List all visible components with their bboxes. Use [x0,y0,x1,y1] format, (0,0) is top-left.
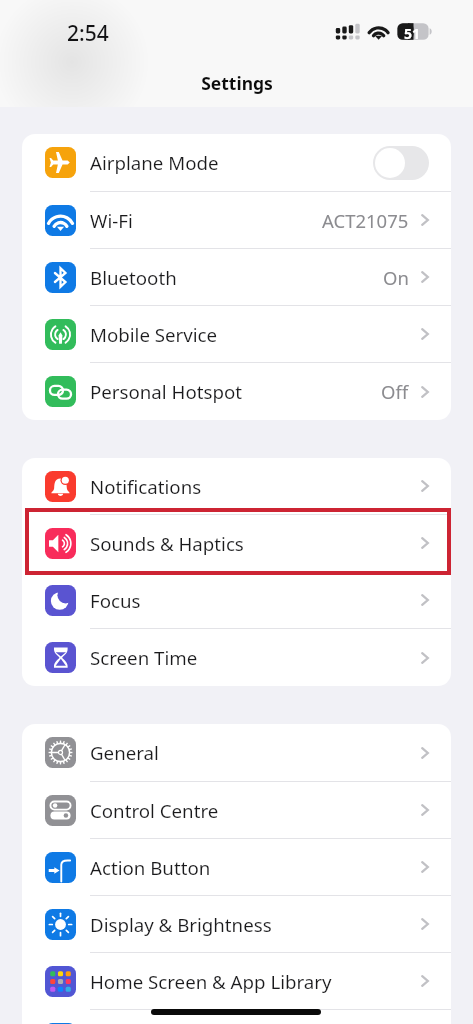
staticText: 2:54 [67,19,109,48]
button[interactable]: Display & Brightness [22,896,451,953]
staticText: Action Button [90,855,211,880]
button[interactable]: Control Centre [22,782,451,839]
staticText: Sounds & Haptics [90,531,244,556]
button[interactable]: General [22,724,451,782]
button[interactable]: Sounds & Haptics [22,515,451,572]
button[interactable]: Action Button [22,839,451,896]
button[interactable]: Screen Time [22,629,451,686]
staticText: 51 [404,24,421,43]
button[interactable]: Notifications [22,458,451,515]
staticText: Airplane Mode [90,150,219,175]
staticText: Settings [201,71,273,95]
button[interactable]: Airplane Mode [22,134,451,192]
button[interactable]: Mobile Service [22,306,451,363]
button[interactable]: Home Screen & App Library [22,953,451,1010]
button[interactable]: Personal Hotspot [22,363,451,420]
staticText: Control Centre [90,798,219,823]
button[interactable]: Toggle Airplane Mode [373,146,429,180]
staticText: Focus [90,588,141,613]
button[interactable]: Wi-Fi [22,192,451,249]
staticText: ACT21075 [322,208,409,233]
button[interactable]: Accessibility [22,1010,451,1024]
staticText: Bluetooth [90,265,177,290]
staticText: Mobile Service [90,322,218,347]
staticText: Display & Brightness [90,912,272,937]
staticText: On [383,265,409,290]
staticText: General [90,740,159,765]
staticText: Home Screen & App Library [90,969,332,994]
staticText: Notifications [90,474,202,499]
staticText: Personal Hotspot [90,379,242,404]
button[interactable]: Focus [22,572,451,629]
staticText: Wi-Fi [90,208,133,233]
staticText: Screen Time [90,645,198,670]
button[interactable]: Bluetooth [22,249,451,306]
staticText: Off [381,379,409,404]
